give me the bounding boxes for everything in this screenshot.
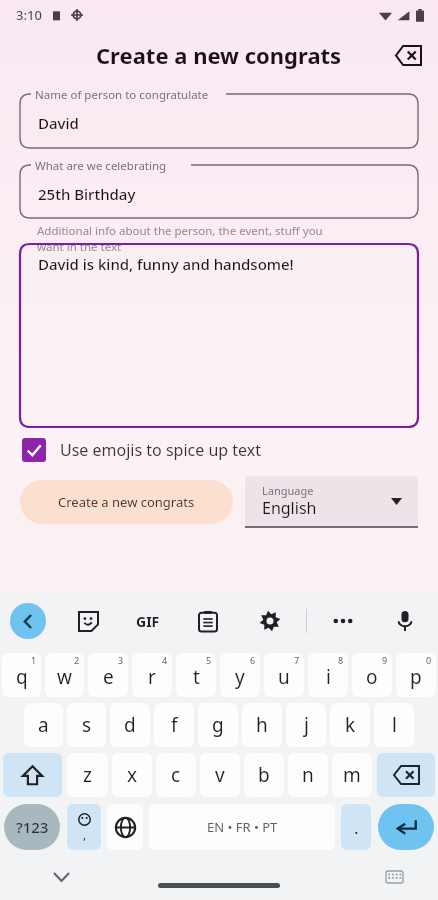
button[interactable]: Shift [3, 753, 62, 797]
button[interactable]: EN • FR • PT [149, 804, 335, 850]
staticText: v [215, 762, 225, 788]
button[interactable]: Back [10, 603, 46, 639]
button[interactable]: v [200, 753, 240, 797]
staticText: z [83, 762, 92, 788]
staticText: d [124, 712, 136, 738]
button[interactable]: i [308, 653, 348, 697]
button[interactable]: k [330, 703, 370, 747]
button[interactable]: d [110, 703, 150, 747]
staticText: 9 [382, 654, 388, 666]
button[interactable]: Switch keyboard [380, 863, 408, 891]
button[interactable]: Name of person to congratulate [20, 86, 418, 148]
staticText: What are we celebrating [35, 158, 167, 174]
staticText: b [258, 762, 270, 788]
staticText: ?123 [16, 817, 49, 837]
staticText: 3:10 [16, 6, 42, 24]
staticText: r [148, 664, 156, 690]
button[interactable]: s [67, 703, 106, 747]
button[interactable]: a [24, 703, 63, 747]
staticText: Language [262, 483, 314, 498]
button[interactable]: . [341, 804, 371, 850]
button[interactable]: l [374, 703, 414, 747]
button[interactable]: Hide keyboard [46, 862, 76, 892]
button[interactable]: What are we celebrating [20, 157, 418, 218]
staticText: m [343, 762, 361, 788]
staticText: EN • FR • PT [207, 818, 278, 836]
button[interactable]: Enter [378, 804, 434, 850]
staticText: c [171, 762, 181, 788]
button[interactable]: h [242, 703, 282, 747]
staticText: n [302, 762, 314, 788]
staticText: l [392, 712, 397, 738]
button[interactable]: Additional info about the person, the ev… [20, 222, 418, 427]
staticText: 1 [31, 654, 37, 666]
staticText: i [326, 664, 331, 690]
staticText: . [354, 816, 359, 839]
button[interactable]: Stickers [69, 602, 107, 640]
button[interactable]: Change language [107, 804, 143, 850]
button[interactable]: e [88, 653, 128, 697]
staticText: 8 [338, 654, 344, 666]
button[interactable]: GIF [130, 603, 166, 639]
staticText: GIF [136, 612, 160, 631]
button[interactable]: Voice input [386, 602, 424, 640]
staticText: 6 [250, 654, 256, 666]
button[interactable]: Clear all [388, 35, 428, 75]
button[interactable]: m [332, 753, 372, 797]
button[interactable]: z [67, 753, 108, 797]
button[interactable]: Create a new congrats [20, 480, 233, 524]
button[interactable]: u [264, 653, 304, 697]
staticText: David [38, 113, 79, 133]
staticText: w [57, 664, 72, 690]
button[interactable]: c [156, 753, 196, 797]
button[interactable]: Backspace [377, 753, 435, 797]
button[interactable]: j [286, 703, 326, 747]
staticText: t [193, 664, 200, 690]
staticText: 3 [118, 654, 124, 666]
staticText: 0 [426, 654, 432, 666]
staticText: j [304, 712, 309, 738]
button[interactable]: f [154, 703, 194, 747]
staticText: 7 [294, 654, 300, 666]
staticText: Name of person to congratulate [35, 87, 209, 103]
button[interactable]: o [352, 653, 392, 697]
button[interactable]: Use emojis to spice up text [22, 433, 416, 467]
button[interactable]: g [198, 703, 238, 747]
staticText: English [262, 497, 317, 519]
staticText: y [235, 664, 245, 690]
button[interactable]: Settings [251, 602, 289, 640]
staticText: 4 [162, 654, 168, 666]
staticText: u [278, 664, 290, 690]
staticText: 2 [74, 654, 80, 666]
button[interactable]: r [132, 653, 172, 697]
staticText: a [38, 712, 49, 738]
staticText: 5 [206, 654, 212, 666]
button[interactable]: y [220, 653, 260, 697]
staticText: David is kind, funny and handsome! [38, 254, 294, 274]
staticText: h [256, 712, 268, 738]
staticText: Create a new congrats [58, 493, 195, 511]
button[interactable]: q [2, 653, 41, 697]
button[interactable]: ?123 [4, 804, 60, 850]
button[interactable]: Clipboard [189, 602, 227, 640]
button[interactable]: t [176, 653, 216, 697]
button[interactable]: p [396, 653, 436, 697]
staticText: e [103, 664, 114, 690]
button[interactable]: w [45, 653, 84, 697]
staticText: Create a new congrats [96, 40, 342, 70]
button[interactable]: b [244, 753, 284, 797]
button[interactable]: x [112, 753, 152, 797]
staticText: g [212, 712, 224, 738]
staticText: Additional info about the person, the ev… [37, 223, 323, 254]
staticText: , [83, 826, 87, 842]
staticText: s [82, 712, 92, 738]
button[interactable]: n [288, 753, 328, 797]
staticText: o [366, 664, 378, 690]
staticText: q [16, 664, 28, 690]
staticText: 25th Birthday [38, 184, 136, 204]
button[interactable]: Emoji [67, 804, 101, 850]
button[interactable]: Language [245, 476, 418, 528]
staticText: x [127, 762, 138, 788]
staticText: k [345, 712, 356, 738]
button[interactable]: More options [324, 602, 362, 640]
